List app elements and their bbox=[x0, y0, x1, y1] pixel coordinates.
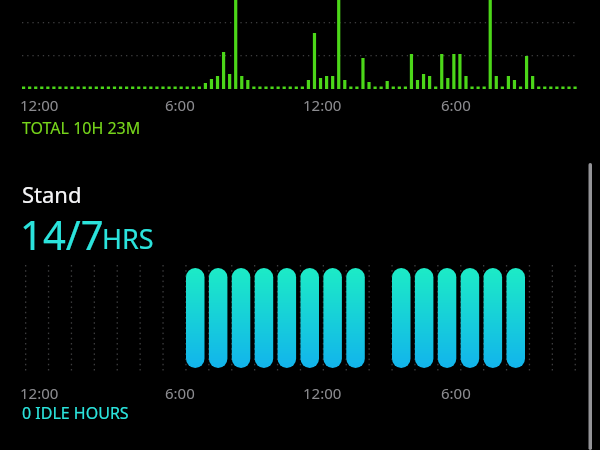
button[interactable]: Activity detail charts bbox=[0, 0, 600, 450]
